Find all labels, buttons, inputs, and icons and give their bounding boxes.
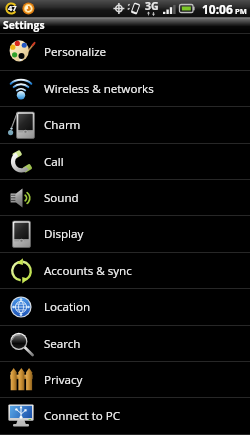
staticText: Accounts & sync <box>44 263 132 279</box>
button[interactable]: Call <box>0 144 250 179</box>
staticText: Charm <box>44 117 81 133</box>
staticText: 3G <box>145 0 159 13</box>
button[interactable]: Search <box>0 326 250 361</box>
button[interactable]: Privacy <box>0 362 250 397</box>
staticText: Privacy <box>44 372 83 388</box>
button[interactable]: Wireless & networks <box>0 71 250 106</box>
button[interactable]: Sound <box>0 180 250 215</box>
staticText: Display <box>44 226 84 242</box>
staticText: PM <box>235 6 247 16</box>
staticText: Wireless & networks <box>44 81 154 97</box>
staticText: Connect to PC <box>44 408 121 424</box>
staticText: Search <box>44 336 81 352</box>
button[interactable]: Personalize <box>0 34 250 70</box>
staticText: Location <box>44 299 91 315</box>
button[interactable]: Display <box>0 216 250 252</box>
staticText: Call <box>44 154 64 170</box>
staticText: Settings <box>3 18 45 32</box>
staticText: 47 <box>8 3 17 13</box>
staticText: Personalize <box>44 44 107 60</box>
button[interactable]: Charm <box>0 107 250 143</box>
staticText: Sound <box>44 190 79 206</box>
button[interactable]: Connect to PC <box>0 398 250 434</box>
button[interactable]: Location <box>0 289 250 325</box>
staticText: 10:06 <box>202 1 233 17</box>
button[interactable]: Accounts & sync <box>0 253 250 288</box>
